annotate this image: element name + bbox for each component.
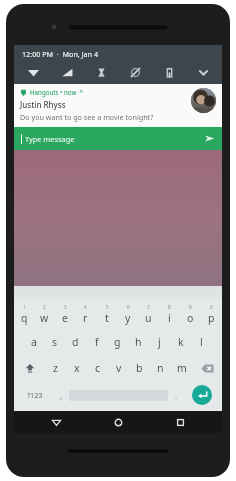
staticText: l	[200, 335, 203, 349]
button[interactable]: d	[65, 329, 86, 355]
button[interactable]: Recents	[160, 411, 200, 433]
button[interactable]: Wi-Fi	[22, 64, 44, 81]
button[interactable]: Collapse	[192, 64, 214, 81]
button[interactable]: Auto-rotate off	[124, 64, 146, 81]
staticText: 12:00 PM · Mon, Jan 4	[22, 49, 99, 59]
button[interactable]: b	[129, 355, 150, 381]
button[interactable]: 5	[96, 299, 117, 329]
button[interactable]: 1	[14, 299, 34, 329]
staticText: 0	[210, 304, 213, 310]
button[interactable]: Enter	[184, 381, 219, 409]
staticText: k	[178, 335, 184, 349]
staticText: d	[72, 335, 79, 349]
button[interactable]: k	[170, 329, 191, 355]
staticText: Hangouts • now ^	[30, 88, 84, 96]
button[interactable]: c	[87, 355, 108, 381]
button[interactable]: m	[171, 355, 192, 381]
staticText: 5	[106, 304, 109, 310]
button[interactable]: h	[128, 329, 149, 355]
staticText: ,	[60, 390, 63, 401]
staticText: g	[114, 335, 121, 349]
staticText: b	[136, 361, 143, 375]
button[interactable]: Home	[98, 411, 138, 433]
staticText: z	[53, 361, 58, 375]
button[interactable]: Comma	[53, 381, 69, 409]
button[interactable]: Contact photo	[191, 88, 216, 113]
staticText: y	[125, 311, 131, 325]
button[interactable]: ?123	[17, 381, 53, 409]
button[interactable]: f	[86, 329, 107, 355]
staticText: 3	[64, 304, 67, 310]
staticText: Justin Rhyss	[20, 99, 66, 110]
staticText: p	[208, 311, 215, 325]
staticText: h	[135, 335, 142, 349]
staticText: o	[187, 311, 194, 325]
staticText: s	[52, 335, 58, 349]
button[interactable]: v	[108, 355, 129, 381]
button[interactable]: Battery	[158, 64, 180, 81]
button[interactable]: Shift	[14, 355, 45, 381]
button[interactable]: Flashlight	[90, 64, 112, 81]
button[interactable]: Back	[36, 411, 76, 433]
staticText: Type message	[25, 134, 75, 144]
button[interactable]: l	[191, 329, 212, 355]
button[interactable]: 8	[159, 299, 180, 329]
button[interactable]: Mobile signal	[56, 64, 78, 81]
button[interactable]: 3	[54, 299, 75, 329]
staticText: 8	[168, 304, 171, 310]
staticText: i	[168, 311, 171, 325]
staticText: e	[62, 311, 68, 325]
button[interactable]: j	[149, 329, 170, 355]
button[interactable]: n	[150, 355, 171, 381]
staticText: 1	[23, 304, 26, 310]
button[interactable]: 9	[180, 299, 201, 329]
staticText: ?123	[27, 390, 43, 400]
button[interactable]: Type message	[14, 127, 222, 150]
button[interactable]: x	[66, 355, 87, 381]
button[interactable]: 6	[117, 299, 138, 329]
button[interactable]: 7	[138, 299, 159, 329]
staticText: v	[116, 361, 122, 375]
button[interactable]: 4	[75, 299, 96, 329]
staticText: q	[21, 311, 28, 325]
staticText: j	[158, 335, 161, 349]
staticText: .	[175, 390, 178, 401]
staticText: 9	[189, 304, 192, 310]
staticText: Do you want to go see a movie tonight?	[20, 112, 154, 122]
staticText: f	[95, 335, 99, 349]
button[interactable]: 0	[201, 299, 222, 329]
button[interactable]: 2	[34, 299, 54, 329]
staticText: n	[157, 361, 164, 375]
staticText: r	[83, 311, 88, 325]
button[interactable]: s	[44, 329, 65, 355]
button[interactable]: Hangouts • now ^	[14, 84, 222, 127]
button[interactable]: g	[107, 329, 128, 355]
staticText: m	[177, 361, 187, 375]
button[interactable]: z	[45, 355, 66, 381]
staticText: 2	[43, 304, 46, 310]
staticText: 4	[84, 304, 87, 310]
staticText: c	[95, 361, 101, 375]
staticText: 7	[147, 304, 150, 310]
staticText: 6	[127, 304, 130, 310]
staticText: t	[105, 311, 109, 325]
staticText: x	[74, 361, 80, 375]
staticText: a	[31, 335, 37, 349]
button[interactable]: a	[24, 329, 44, 355]
button[interactable]: Backspace	[192, 355, 222, 381]
staticText: u	[145, 311, 152, 325]
staticText: w	[40, 311, 49, 325]
